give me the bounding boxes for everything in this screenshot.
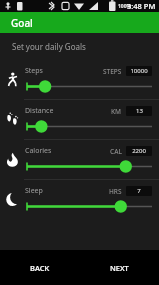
other: Sleep (5, 192, 20, 207)
staticText: Steps (25, 66, 43, 76)
button[interactable]: Steps slider (25, 80, 152, 93)
button[interactable]: Distance (0, 100, 159, 139)
button[interactable]: Calories slider (25, 160, 152, 173)
staticText: Goal (11, 16, 33, 30)
button[interactable]: NEXT (79, 250, 159, 285)
staticText: 2200 (132, 147, 146, 155)
button[interactable]: BACK (0, 250, 79, 285)
staticText: 100% (118, 3, 132, 10)
staticText: 10000 (130, 67, 148, 75)
staticText: 13 (136, 107, 143, 115)
other: Steps (5, 72, 20, 87)
staticText: KM (111, 107, 122, 116)
staticText: HRS (109, 187, 122, 196)
staticText: NEXT (110, 263, 129, 273)
button[interactable]: Sleep (0, 180, 159, 219)
button[interactable]: Steps (0, 60, 159, 99)
staticText: 3:48 PM (127, 1, 156, 11)
staticText: Calories (25, 146, 52, 156)
staticText: Set your daily Goals (12, 41, 86, 52)
other: Distance (5, 112, 20, 127)
staticText: STEPS (103, 67, 122, 76)
other: Calories (5, 152, 20, 167)
button[interactable]: Calories (0, 140, 159, 179)
staticText: 7 (137, 187, 141, 195)
button[interactable]: Sleep slider (25, 200, 152, 213)
staticText: Distance (25, 106, 54, 116)
staticText: BACK (30, 263, 50, 273)
button[interactable]: Distance slider (25, 120, 152, 133)
staticText: CAL (110, 147, 122, 156)
staticText: Sleep (25, 186, 43, 196)
